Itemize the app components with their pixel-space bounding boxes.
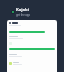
button[interactable] — [9, 62, 55, 65]
staticText: Kajabi — [16, 7, 29, 13]
staticText: get the app — [16, 13, 30, 17]
button[interactable] — [9, 31, 45, 33]
button[interactable]: Kajabi logo — [11, 10, 15, 14]
button[interactable] — [9, 22, 55, 24]
button[interactable] — [9, 48, 55, 50]
